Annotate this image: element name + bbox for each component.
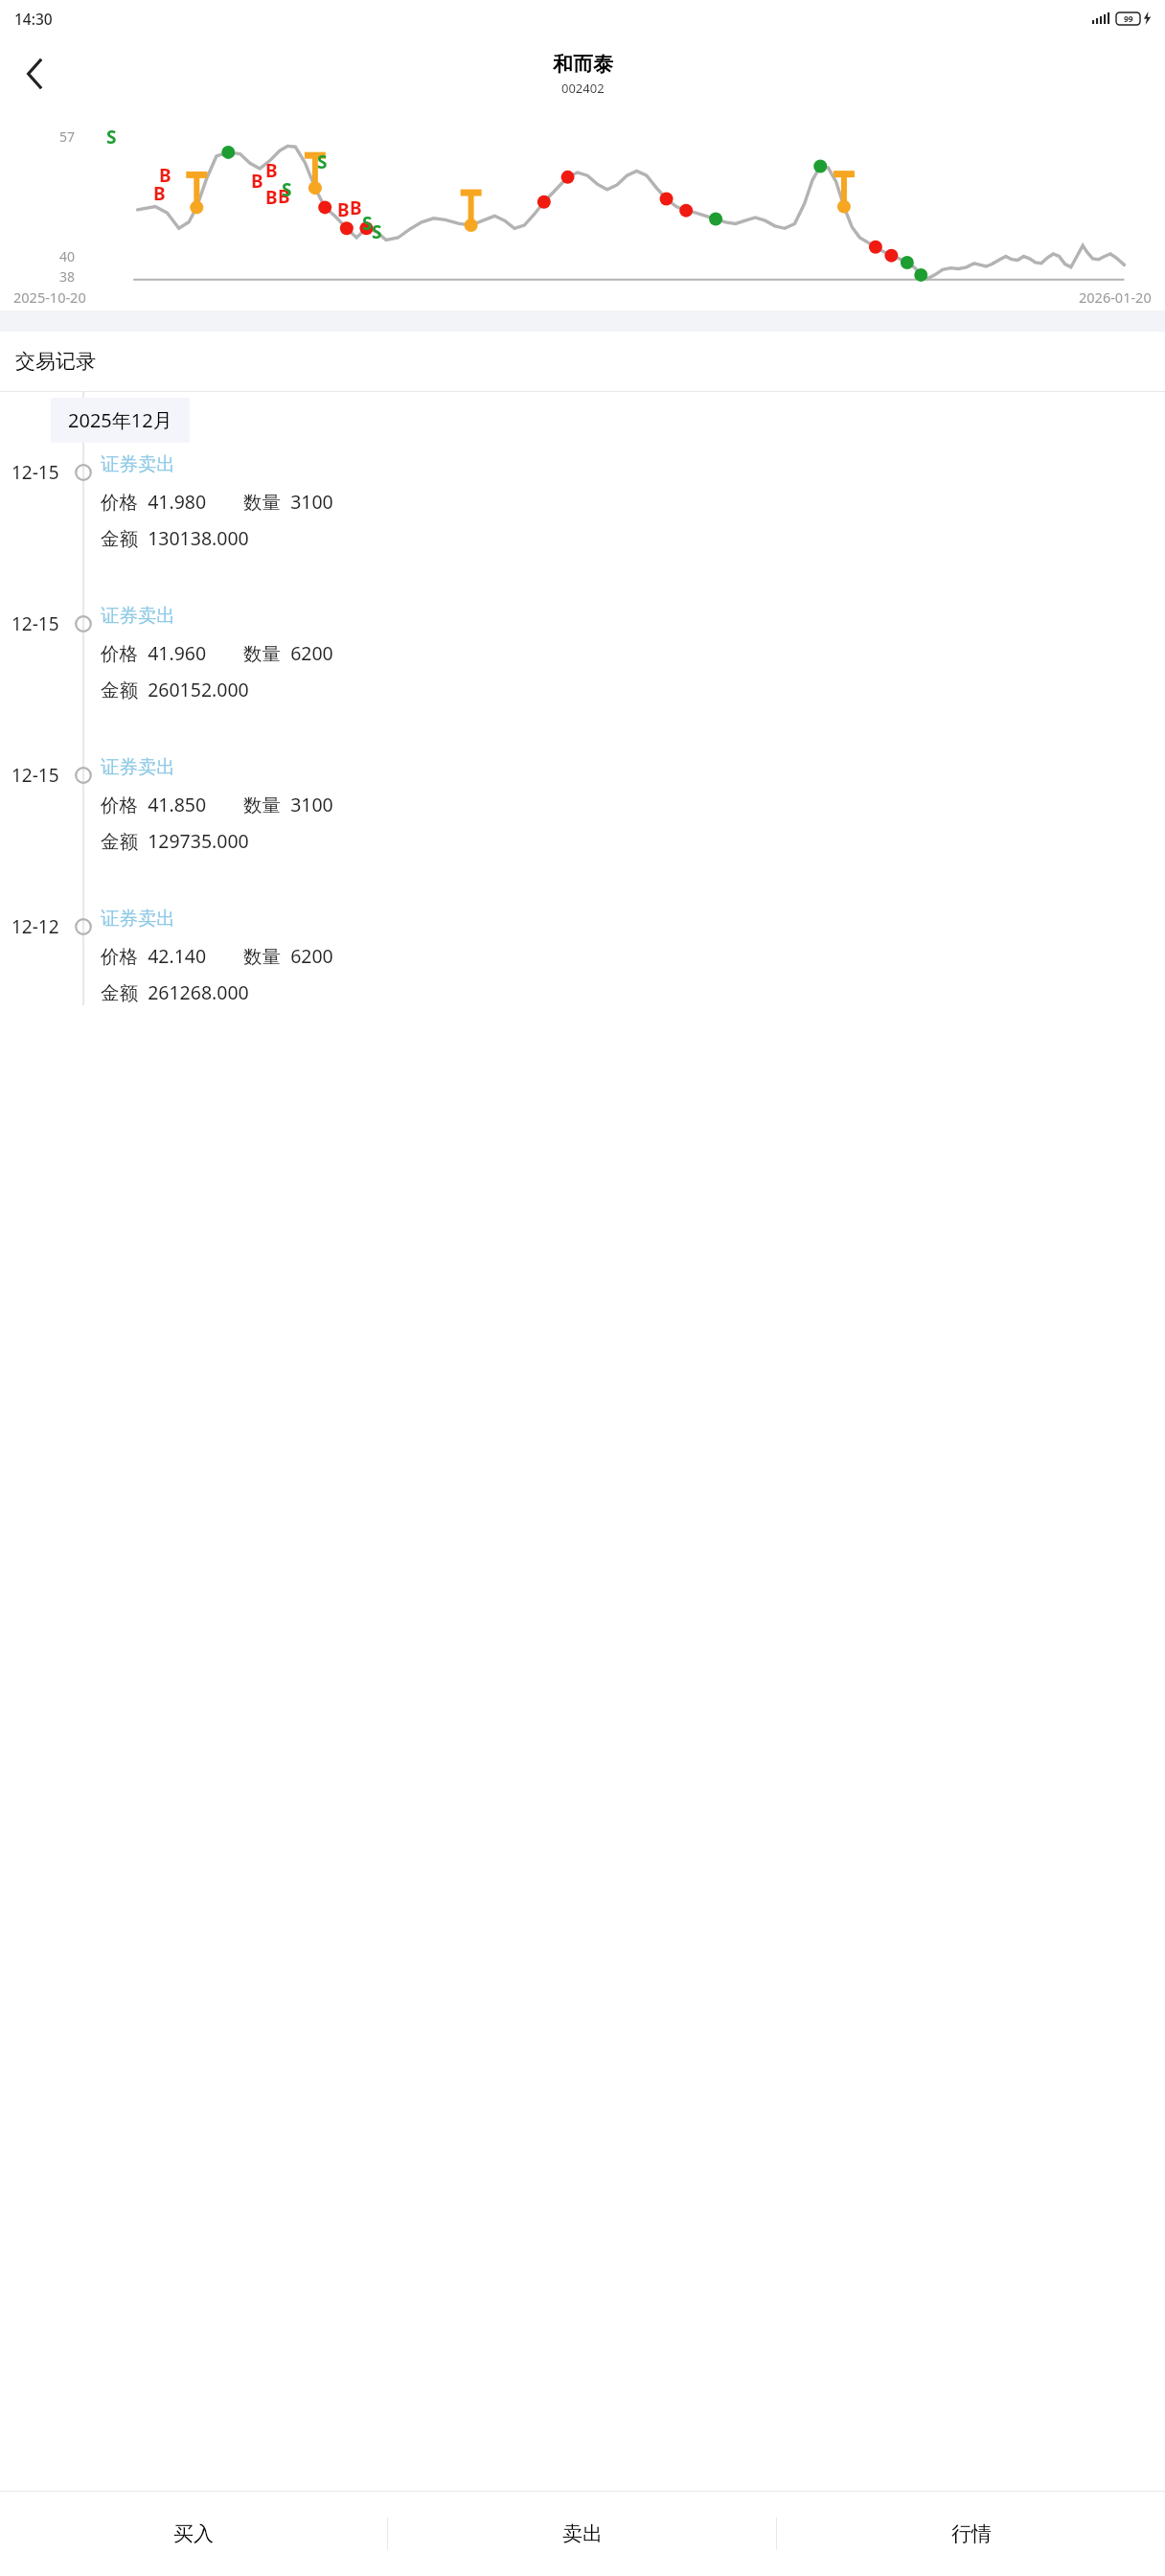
staticText: 买入 [173,2521,214,2546]
staticText: 14:30 [14,9,53,29]
button[interactable]: 2025年12月 [51,398,190,443]
staticText: 数量 3100 [243,792,333,817]
staticText: 2025-10-20 [13,287,86,307]
button[interactable]: 12-12 [0,897,1165,1005]
staticText: S [372,219,382,244]
staticText: 价格 41.960 [101,640,207,666]
button[interactable]: 12-15 [0,443,1165,594]
button[interactable]: Back [8,47,61,101]
staticText: 证券卖出 [101,452,175,476]
button[interactable]: 买入 [0,2492,387,2576]
staticText: 002402 [561,80,605,97]
staticText: 价格 42.140 [101,943,207,969]
staticText: B [153,181,166,206]
staticText: 金额 260152.000 [101,677,249,702]
button[interactable]: 行情 [777,2492,1165,2576]
staticText: 12-15 [11,763,59,788]
button[interactable]: 卖出 [388,2492,776,2576]
staticText: 数量 6200 [243,943,333,969]
staticText: 和而泰 [553,52,613,77]
button[interactable]: 12-15 [0,746,1165,897]
staticText: B [350,195,362,220]
staticText: S [106,125,117,149]
staticText: S [362,211,373,236]
staticText: 证券卖出 [101,604,175,628]
staticText: 2025年12月 [68,407,172,433]
staticText: 证券卖出 [101,907,175,931]
staticText: 金额 129735.000 [101,828,249,854]
staticText: 价格 41.850 [101,792,207,817]
staticText: B [251,169,263,194]
staticText: 金额 130138.000 [101,525,249,551]
staticText: 金额 261268.000 [101,979,249,1005]
staticText: B [265,158,278,183]
staticText: 卖出 [562,2521,603,2546]
staticText: 交易记录 [15,349,96,374]
staticText: 数量 6200 [243,640,333,666]
staticText: 12-15 [11,611,59,636]
staticText: 57 [59,127,76,146]
button[interactable]: 12-15 [0,594,1165,746]
staticText: 38 [59,267,76,286]
staticText: 12-15 [11,460,59,485]
staticText: S [317,149,328,174]
staticText: B [278,184,290,209]
staticText: 数量 3100 [243,489,333,515]
staticText: 40 [59,247,76,265]
staticText: 12-12 [11,914,59,939]
staticText: 行情 [951,2521,992,2546]
staticText: 2026-01-20 [1079,287,1152,307]
staticText: B [265,185,278,210]
staticText: B [337,197,350,222]
staticText: 证券卖出 [101,755,175,779]
staticText: S [282,177,292,202]
staticText: 价格 41.980 [101,489,207,515]
staticText: B [159,163,171,188]
staticText: 99 [1124,13,1133,25]
